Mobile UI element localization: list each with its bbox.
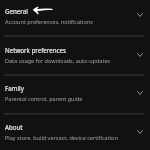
other: Expand <box>134 11 146 19</box>
button[interactable]: Network preferences <box>0 36 150 75</box>
staticText: Account preferences, notifications <box>5 18 93 25</box>
staticText: Parental control, parent guide <box>5 95 83 102</box>
other: Expand <box>134 128 146 136</box>
other: Expand <box>134 89 146 97</box>
staticText: Play store, build version, device certif… <box>5 134 118 141</box>
button[interactable]: General <box>0 0 150 36</box>
staticText: Data usage for downloads, auto-updates <box>5 57 111 64</box>
staticText: General <box>5 7 28 15</box>
button[interactable]: Family <box>0 74 150 113</box>
staticText: Network preferences <box>5 46 67 54</box>
staticText: About <box>5 123 23 131</box>
other: Expand <box>134 51 146 59</box>
button[interactable]: About <box>0 113 150 150</box>
staticText: Family <box>5 84 24 92</box>
